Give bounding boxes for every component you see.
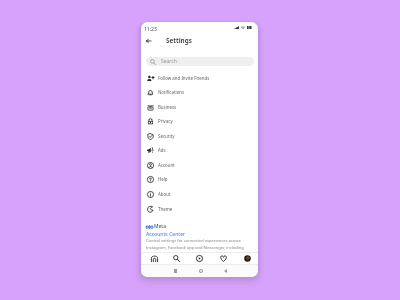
button[interactable]: Theme [141, 202, 258, 216]
staticText: Account [158, 162, 175, 168]
button[interactable]: Profile [242, 253, 253, 264]
button[interactable]: Back [222, 267, 229, 274]
staticText: Control settings for connected experienc… [146, 238, 244, 250]
button[interactable]: Back [142, 35, 154, 47]
staticText: Business [158, 104, 177, 110]
staticText: Help [158, 176, 168, 182]
button[interactable]: Reels [194, 253, 205, 264]
staticText: About [158, 191, 171, 197]
staticText: Follow and Invite Friends [158, 75, 210, 81]
button[interactable]: Security [141, 129, 258, 143]
button[interactable]: Search [146, 57, 254, 66]
button[interactable]: Help [141, 172, 258, 186]
staticText: Meta [154, 223, 166, 230]
button[interactable]: Recents [172, 267, 179, 274]
button[interactable]: Activity [218, 253, 229, 264]
staticText: Settings [166, 36, 192, 45]
staticText: Notifications [158, 89, 185, 95]
button[interactable]: Ads [141, 143, 258, 157]
staticText: Search [161, 58, 177, 65]
button[interactable]: Home [149, 253, 160, 264]
staticText: Privacy [158, 118, 173, 124]
button[interactable]: Home [197, 267, 204, 274]
button[interactable]: Follow and Invite Friends [141, 71, 258, 85]
button[interactable]: Notifications [141, 85, 258, 99]
button[interactable]: Accounts Center [146, 231, 186, 238]
button[interactable]: Account [141, 158, 258, 172]
button[interactable]: Privacy [141, 114, 258, 128]
button[interactable]: Search [171, 253, 182, 264]
staticText: Security [158, 133, 175, 139]
staticText: 11:23 [144, 26, 157, 33]
staticText: Ads [158, 147, 166, 153]
button[interactable]: About [141, 187, 258, 201]
button[interactable]: Business [141, 100, 258, 114]
staticText: Theme [158, 206, 173, 212]
